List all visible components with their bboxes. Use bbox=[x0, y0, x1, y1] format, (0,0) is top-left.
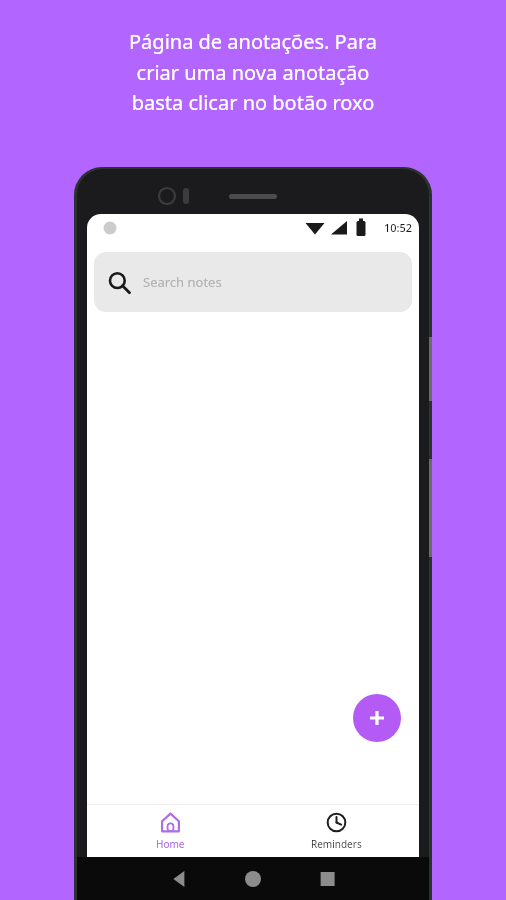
button[interactable]: Add note bbox=[353, 694, 401, 742]
staticText: 10:52 bbox=[384, 220, 413, 235]
button[interactable]: Home bbox=[87, 805, 253, 857]
button[interactable]: Search notes bbox=[94, 252, 412, 312]
button[interactable]: Reminders bbox=[253, 805, 419, 857]
staticText: Search notes bbox=[143, 273, 222, 291]
staticText: Home bbox=[156, 837, 185, 851]
staticText: Página de anotações. Para criar uma nova… bbox=[0, 28, 506, 115]
staticText: Reminders bbox=[311, 837, 362, 851]
